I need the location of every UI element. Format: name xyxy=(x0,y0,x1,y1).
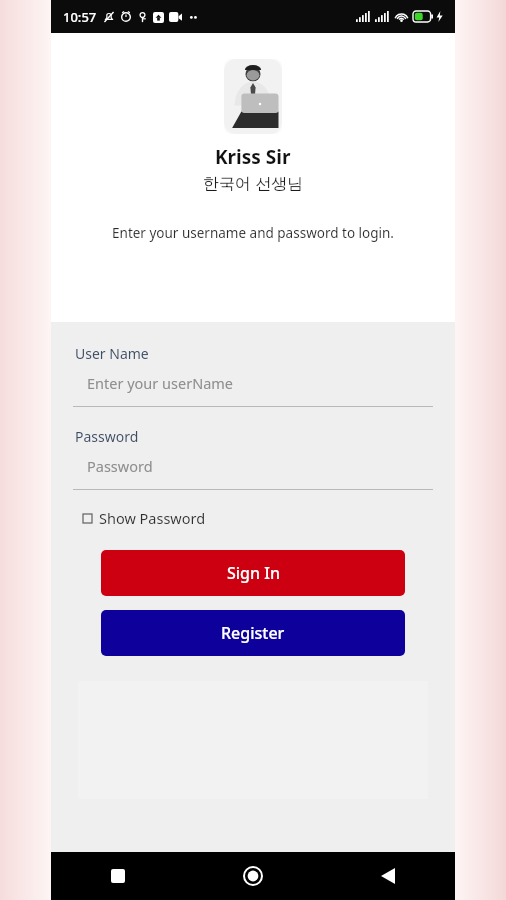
staticText: Password xyxy=(75,427,139,446)
button[interactable]: Recents xyxy=(51,852,185,900)
staticText: Sign In xyxy=(227,562,280,584)
staticText: User Name xyxy=(75,344,149,363)
button[interactable]: Back xyxy=(320,852,455,900)
staticText: 10:57 xyxy=(63,8,97,26)
staticText: Show Password xyxy=(99,508,206,528)
button[interactable]: Home xyxy=(185,852,320,900)
button[interactable]: Sign In xyxy=(101,550,405,596)
staticText: 한국어 선생님 xyxy=(203,172,304,194)
staticText: Kriss Sir xyxy=(215,144,291,170)
button[interactable]: Show Password xyxy=(73,506,212,530)
staticText: Enter your username and password to logi… xyxy=(112,224,394,242)
button[interactable]: Enter your userName xyxy=(73,373,433,407)
staticText: Register xyxy=(221,622,285,644)
staticText: Enter your userName xyxy=(87,373,234,393)
button[interactable]: Register xyxy=(101,610,405,656)
staticText: Password xyxy=(87,456,153,476)
button[interactable]: Password xyxy=(73,456,433,490)
